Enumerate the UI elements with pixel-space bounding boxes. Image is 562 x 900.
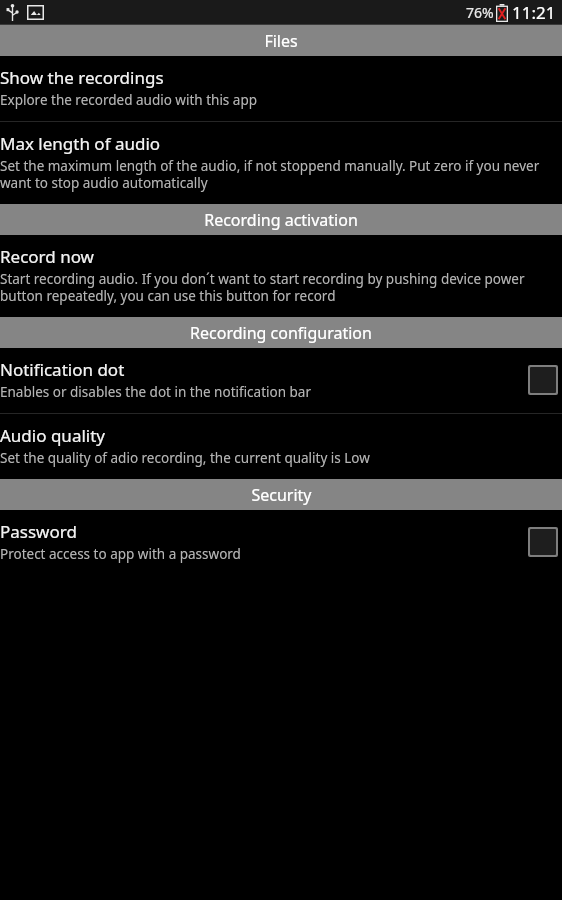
staticText: Start recording audio. If you don´t want… [0,270,562,305]
staticText: Set the maximum length of the audio, if … [0,157,562,192]
staticText: Audio quality [0,424,105,447]
staticText: Enables or disables the dot in the notif… [0,383,311,401]
staticText: Password [0,520,77,543]
button[interactable]: Record now [0,235,562,317]
staticText: Protect access to app with a password [0,545,241,563]
button[interactable]: Notification dot [0,348,562,413]
staticText: Max length of audio [0,132,161,155]
staticText: Explore the recorded audio with this app [0,91,258,109]
staticText: Security [251,484,312,506]
button[interactable]: Password [528,527,558,557]
staticText: 11:21 [512,1,556,24]
button[interactable]: Show the recordings [0,56,562,121]
staticText: Record now [0,245,94,268]
staticText: Files [264,30,298,52]
staticText: Recording activation [204,209,358,231]
button[interactable]: Password [0,510,562,575]
staticText: Recording configuration [190,322,372,344]
staticText: Notification dot [0,358,125,381]
button[interactable]: Audio quality [0,414,562,479]
button[interactable]: Max length of audio [0,122,562,204]
staticText: 76% [466,3,494,22]
staticText: Set the quality of adio recording, the c… [0,449,370,467]
staticText: Show the recordings [0,66,164,89]
button[interactable]: Notification dot [528,365,558,395]
